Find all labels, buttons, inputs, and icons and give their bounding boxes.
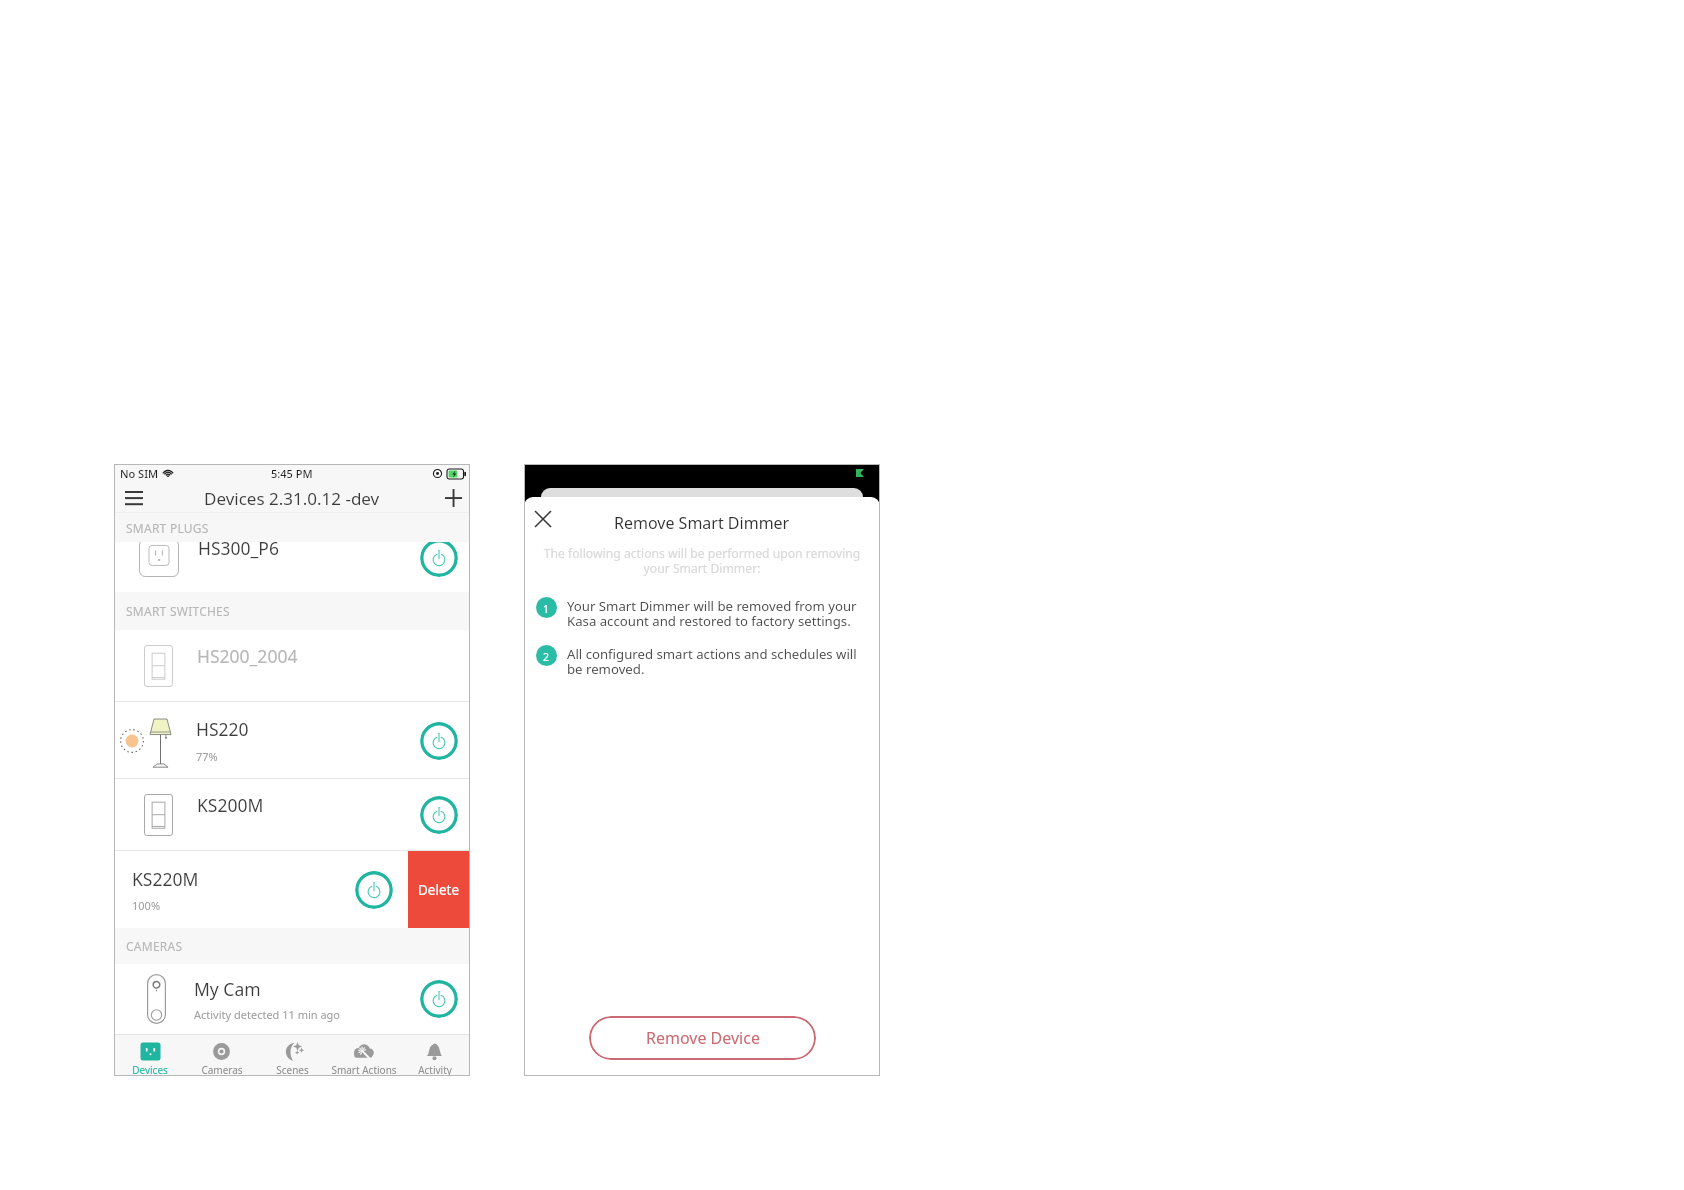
button[interactable]: Toggle power: [355, 871, 393, 909]
button[interactable]: My Cam: [114, 964, 470, 1034]
button[interactable]: Add device: [439, 484, 467, 512]
staticText: SMART SWITCHES: [126, 603, 230, 619]
button[interactable]: HS200_2004: [114, 630, 470, 702]
button[interactable]: Toggle power: [420, 796, 458, 834]
staticText: 2: [543, 650, 550, 664]
button[interactable]: Smart Actions: [328, 1035, 399, 1076]
button[interactable]: Menu: [120, 484, 148, 512]
staticText: HS300_P6: [198, 536, 279, 560]
button[interactable]: HS300_P6: [114, 542, 470, 592]
staticText: The following actions will be performed …: [530, 545, 874, 577]
staticText: Activity: [418, 1063, 452, 1076]
button[interactable]: Cameras: [186, 1035, 257, 1076]
staticText: Cameras: [201, 1063, 243, 1076]
staticText: No SIM: [120, 466, 159, 481]
staticText: Scenes: [276, 1063, 309, 1076]
button[interactable]: HS220: [114, 702, 470, 779]
staticText: Your Smart Dimmer will be removed from y…: [567, 597, 857, 630]
button[interactable]: Toggle power: [420, 722, 458, 760]
staticText: SMART PLUGS: [126, 520, 209, 536]
staticText: Remove Smart Dimmer: [614, 512, 790, 534]
staticText: KS220M: [132, 867, 199, 891]
staticText: My Cam: [194, 977, 261, 1001]
staticText: CAMERAS: [126, 938, 183, 954]
button[interactable]: Scenes: [257, 1035, 328, 1076]
button[interactable]: Close: [526, 502, 560, 536]
staticText: Smart Actions: [331, 1063, 397, 1076]
button[interactable]: Remove Device: [589, 1016, 816, 1060]
staticText: 1: [543, 602, 550, 616]
staticText: 5:45 PM: [271, 466, 313, 481]
staticText: Delete: [418, 881, 460, 899]
staticText: Devices 2.31.0.12 -dev: [204, 487, 380, 510]
staticText: 100%: [132, 898, 161, 913]
staticText: KS200M: [197, 793, 264, 817]
staticText: 77%: [196, 749, 218, 764]
staticText: Activity detected 11 min ago: [194, 1007, 341, 1022]
button[interactable]: Delete: [408, 851, 470, 928]
staticText: HS220: [196, 717, 249, 741]
staticText: Devices: [132, 1063, 168, 1076]
button[interactable]: Toggle power: [420, 980, 458, 1018]
staticText: HS200_2004: [197, 644, 298, 668]
button[interactable]: KS200M: [114, 779, 470, 851]
button[interactable]: Activity: [399, 1035, 470, 1076]
button[interactable]: Toggle power: [420, 539, 458, 577]
staticText: Remove Device: [646, 1027, 760, 1049]
staticText: All configured smart actions and schedul…: [567, 645, 857, 678]
button[interactable]: Devices: [114, 1035, 186, 1076]
